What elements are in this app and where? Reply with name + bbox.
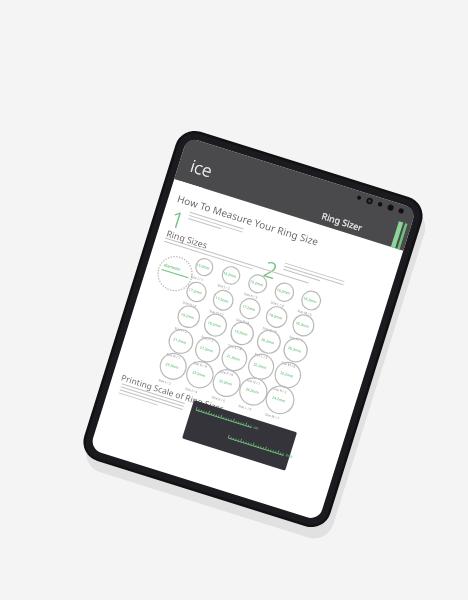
button[interactable]: Ring Sizer tablet mockup <box>0 0 468 600</box>
